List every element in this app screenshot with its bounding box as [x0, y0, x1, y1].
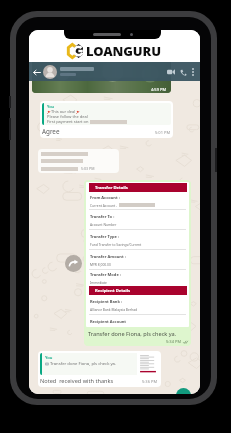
staticText: 5:01 PM [155, 130, 171, 135]
staticText: Alliance Bank Malaysia Berhad [90, 307, 138, 311]
staticText: Recipient Account [90, 319, 127, 324]
button[interactable]: Video call [164, 64, 177, 80]
button[interactable]: LOANGURU [68, 42, 161, 60]
button[interactable]: Transfer Details [84, 180, 191, 346]
staticText: This our deal [51, 109, 76, 114]
staticText: Transfer Mode : [90, 272, 121, 277]
button[interactable]: New message [176, 388, 191, 394]
staticText: Transfer Type : [90, 234, 120, 239]
staticText: Immediate [90, 280, 107, 284]
staticText: 5:34 PM [166, 339, 182, 344]
button[interactable]: You [38, 351, 161, 387]
staticText: Fund Transfer to Savings/Current [90, 242, 142, 246]
button[interactable]: Photo message [32, 62, 171, 93]
button[interactable]: Recipient Details [89, 286, 187, 295]
staticText: You [47, 104, 55, 109]
staticText: Transfer done Fiona, pls check ya. [88, 330, 177, 338]
staticText: Recipient Bank : [90, 299, 123, 304]
staticText: Transfer Details [95, 185, 128, 191]
staticText: Recipient Details [95, 288, 131, 294]
staticText: Please follow the deal [47, 114, 88, 119]
button[interactable]: Profile photo [43, 65, 57, 79]
staticText: Noted received with thanks [40, 377, 114, 385]
button[interactable]: Transfer Details [89, 183, 187, 192]
staticText: Current Account - [90, 203, 118, 207]
staticText: MYR 8,000.00 [90, 262, 111, 266]
staticText: 4:59 PM [151, 87, 167, 92]
staticText: Transfer To : [90, 214, 115, 219]
button[interactable]: You [40, 101, 173, 138]
staticText: Account Number [90, 222, 117, 226]
staticText: You [45, 355, 53, 361]
staticText: LOANGURU [86, 42, 161, 60]
button[interactable]: Voice call [177, 64, 189, 80]
staticText: 5:03 PM [81, 166, 95, 171]
button[interactable]: 5:03 PM [38, 149, 119, 173]
button[interactable]: Forward [65, 255, 82, 272]
staticText: Transfer done Fiona, pls check ya. [50, 361, 117, 367]
button[interactable]: Back [31, 64, 42, 80]
staticText: Agree [42, 127, 60, 136]
staticText: 5:36 PM [142, 379, 158, 384]
button[interactable]: More options [189, 64, 197, 80]
staticText: First payment start on [47, 119, 90, 124]
staticText: From Account : [90, 195, 120, 200]
staticText: Transfer Amount : [90, 254, 126, 259]
